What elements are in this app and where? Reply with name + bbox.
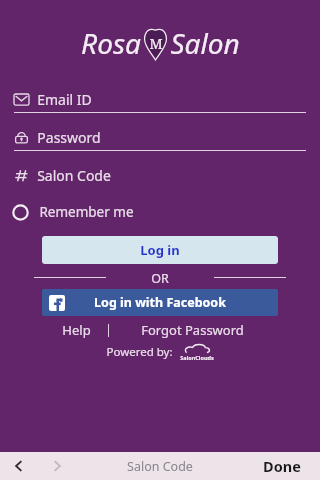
button[interactable]: Password: [0, 124, 320, 150]
staticText: Salon Code: [37, 166, 111, 185]
staticText: SalonClouds: [180, 354, 214, 361]
staticText: Salon: [170, 24, 240, 62]
staticText: Password: [37, 128, 101, 147]
button[interactable]: Email ID: [0, 86, 320, 112]
button[interactable]: Salon Code: [0, 162, 320, 188]
button[interactable]: Remember me: [0, 201, 320, 223]
button[interactable]: Help: [44, 320, 108, 340]
staticText: Log in with Facebook: [94, 294, 226, 311]
staticText: Done: [263, 456, 301, 476]
staticText: Forgot Password: [141, 321, 244, 339]
staticText: Help: [62, 321, 91, 339]
staticText: Remember me: [39, 203, 134, 221]
staticText: Log in: [140, 241, 180, 259]
staticText: M: [149, 34, 163, 53]
staticText: Rosa: [81, 24, 141, 62]
button[interactable]: Log in with Facebook: [42, 289, 278, 316]
staticText: Powered by:: [106, 344, 173, 360]
button[interactable]: Next field: [38, 452, 76, 480]
staticText: OR: [151, 270, 169, 284]
button[interactable]: Log in: [42, 236, 278, 264]
button[interactable]: Previous field: [0, 452, 38, 480]
button[interactable]: Done: [244, 452, 320, 480]
button[interactable]: Forgot Password: [109, 320, 276, 340]
staticText: Email ID: [37, 90, 92, 109]
staticText: Salon Code: [127, 458, 193, 475]
